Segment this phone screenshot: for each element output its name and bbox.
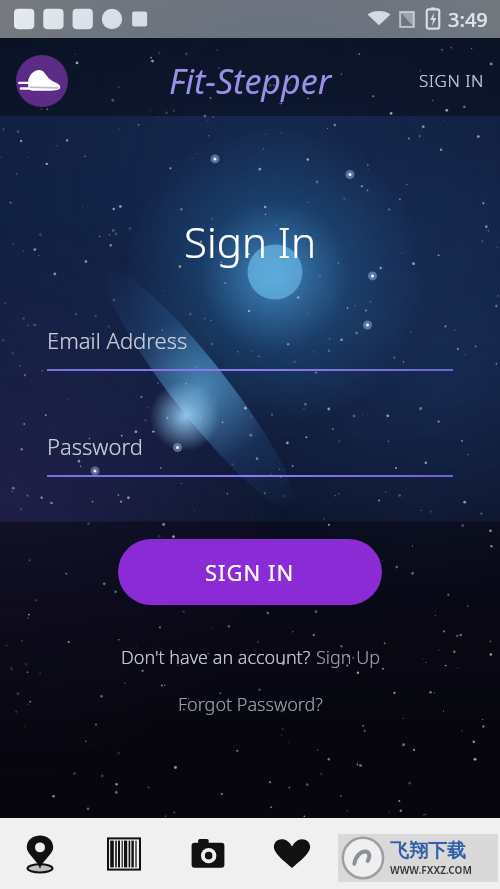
button[interactable]: Fitness band — [350, 828, 402, 880]
button[interactable]: SIGN IN — [118, 539, 382, 605]
staticText: Password — [47, 431, 143, 461]
staticText: 飞翔下载 — [390, 839, 466, 863]
staticText: 3:49 — [448, 6, 488, 33]
button[interactable]: Forgot Password? — [166, 688, 335, 721]
button[interactable]: Scan barcode — [98, 828, 150, 880]
button[interactable]: Camera — [182, 828, 234, 880]
staticText: SIGN IN — [419, 69, 484, 92]
button[interactable]: SIGN IN — [403, 59, 500, 102]
staticText: Email Address — [47, 325, 188, 355]
button[interactable]: Location — [14, 828, 66, 880]
button[interactable]: More — [434, 828, 486, 880]
button[interactable]: Sign Up — [316, 645, 380, 670]
staticText: Forgot Password? — [178, 692, 323, 717]
staticText: Sign In — [0, 213, 500, 270]
staticText: Don't have an account? — [121, 645, 316, 670]
button[interactable]: Heart rate — [266, 828, 318, 880]
staticText: SIGN IN — [205, 557, 295, 587]
button[interactable]: Password — [47, 431, 453, 477]
staticText: Fit-Stepper — [169, 58, 332, 104]
staticText: Sign Up — [316, 645, 380, 670]
button[interactable]: Email Address — [47, 325, 453, 371]
staticText: WWW.FXXZ.COM — [390, 863, 472, 877]
button[interactable]: Fit-Stepper logo — [16, 55, 68, 107]
